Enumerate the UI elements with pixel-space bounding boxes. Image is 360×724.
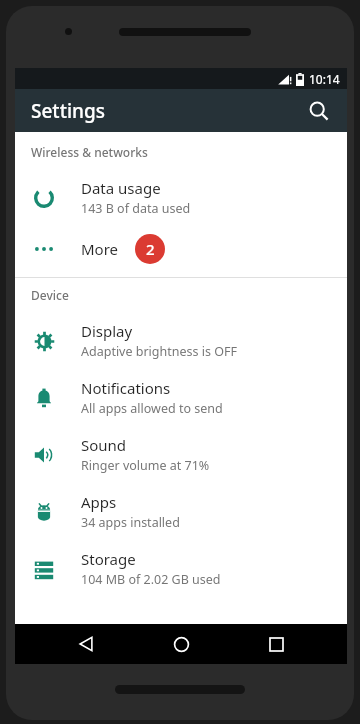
staticText: All apps allowed to send bbox=[81, 400, 223, 417]
button[interactable]: Recents bbox=[252, 624, 300, 664]
staticText: Notifications bbox=[81, 378, 171, 398]
staticText: Sound bbox=[81, 435, 127, 455]
staticText: 10:14 bbox=[309, 71, 340, 87]
staticText: Display bbox=[81, 321, 133, 341]
staticText: Adaptive brightness is OFF bbox=[81, 343, 237, 360]
staticText: Data usage bbox=[81, 178, 161, 198]
button[interactable]: Data usage bbox=[15, 169, 347, 226]
staticText: 143 B of data used bbox=[81, 200, 191, 217]
button[interactable]: Back bbox=[62, 624, 110, 664]
button[interactable]: Search bbox=[299, 91, 339, 131]
button[interactable]: Storage bbox=[15, 540, 347, 597]
staticText: 34 apps installed bbox=[81, 514, 180, 531]
staticText: 104 MB of 2.02 GB used bbox=[81, 571, 221, 588]
button[interactable]: Sound bbox=[15, 426, 347, 483]
button[interactable]: Home bbox=[157, 624, 205, 664]
staticText: Apps bbox=[81, 492, 117, 512]
button[interactable]: Display bbox=[15, 312, 347, 369]
staticText: Device bbox=[31, 287, 69, 303]
staticText: Wireless & networks bbox=[31, 144, 148, 160]
button[interactable]: Apps bbox=[15, 483, 347, 540]
staticText: Ringer volume at 71% bbox=[81, 457, 210, 474]
staticText: Settings bbox=[31, 98, 105, 124]
staticText: More bbox=[81, 239, 119, 259]
staticText: Storage bbox=[81, 549, 136, 569]
staticText: 2 bbox=[146, 239, 155, 259]
button[interactable]: Notifications bbox=[15, 369, 347, 426]
button[interactable]: More bbox=[15, 226, 347, 271]
